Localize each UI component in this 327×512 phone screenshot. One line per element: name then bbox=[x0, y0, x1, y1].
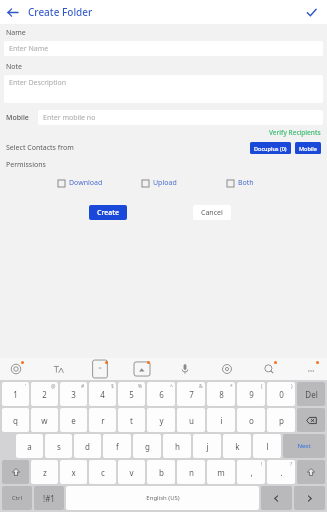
button[interactable]: u bbox=[177, 408, 205, 432]
staticText: Upload bbox=[153, 178, 177, 188]
button[interactable]: q bbox=[2, 408, 29, 432]
button[interactable]: w bbox=[31, 408, 58, 432]
staticText: y bbox=[159, 415, 164, 426]
staticText: ( bbox=[261, 383, 263, 390]
button[interactable]: 9 bbox=[237, 382, 265, 406]
button[interactable]: Next bbox=[283, 434, 325, 458]
staticText: Mobile bbox=[6, 113, 38, 123]
button[interactable]: Done bbox=[299, 0, 323, 24]
button[interactable]: y bbox=[147, 408, 175, 432]
button[interactable]: Back bbox=[0, 0, 24, 24]
button[interactable]: g bbox=[133, 434, 161, 458]
button[interactable]: e bbox=[60, 408, 87, 432]
button[interactable]: t bbox=[118, 408, 145, 432]
staticText: Next bbox=[297, 442, 311, 450]
staticText: h bbox=[175, 441, 180, 452]
staticText: * bbox=[230, 383, 233, 390]
staticText: r bbox=[101, 415, 105, 426]
staticText: s bbox=[57, 441, 61, 452]
button[interactable]: Docuplus (0) bbox=[250, 142, 291, 154]
button[interactable]: Voice input bbox=[175, 359, 195, 379]
button[interactable]: v bbox=[118, 460, 145, 484]
staticText: . bbox=[280, 467, 283, 478]
button[interactable]: Shift bbox=[297, 460, 325, 484]
staticText: ^ bbox=[170, 383, 173, 390]
button[interactable]: Enter Description bbox=[4, 75, 323, 103]
button[interactable]: Ctrl bbox=[2, 486, 32, 510]
button[interactable]: Move cursor right bbox=[294, 486, 325, 510]
button[interactable]: 3 bbox=[60, 382, 87, 406]
staticText: , bbox=[250, 467, 253, 478]
button[interactable]: Emoji bbox=[6, 359, 26, 379]
button[interactable]: p bbox=[267, 408, 295, 432]
staticText: Del bbox=[305, 389, 318, 400]
staticText: Ctrl bbox=[12, 494, 22, 502]
button[interactable]: Enter mobile no bbox=[38, 110, 323, 125]
button[interactable]: !#1 bbox=[34, 486, 64, 510]
button[interactable]: a bbox=[16, 434, 43, 458]
button[interactable]: 4 bbox=[89, 382, 116, 406]
staticText: ) bbox=[291, 383, 293, 390]
button[interactable]: 0 bbox=[267, 382, 295, 406]
button[interactable]: 8 bbox=[207, 382, 235, 406]
button[interactable]: d bbox=[74, 434, 101, 458]
button[interactable]: m bbox=[207, 460, 235, 484]
button[interactable]: Stickers bbox=[90, 359, 110, 379]
button[interactable]: 7 bbox=[177, 382, 205, 406]
button[interactable]: Move cursor left bbox=[261, 486, 292, 510]
button[interactable]: k bbox=[223, 434, 251, 458]
button[interactable]: Translate bbox=[48, 359, 68, 379]
button[interactable]: Both bbox=[227, 178, 299, 188]
staticText: 2 bbox=[42, 389, 47, 400]
staticText: c bbox=[101, 467, 105, 478]
button[interactable]: Del bbox=[297, 382, 325, 406]
button[interactable]: Upload bbox=[142, 178, 227, 188]
staticText: @ bbox=[51, 383, 56, 390]
button[interactable]: , bbox=[237, 460, 265, 484]
staticText: ' bbox=[25, 383, 27, 390]
button[interactable]: Verify Recipients bbox=[269, 128, 321, 137]
button[interactable]: English (US) bbox=[66, 486, 259, 510]
button[interactable]: Settings bbox=[217, 359, 237, 379]
button[interactable]: . bbox=[267, 460, 295, 484]
button[interactable]: b bbox=[147, 460, 175, 484]
button[interactable]: s bbox=[45, 434, 72, 458]
staticText: e bbox=[71, 415, 76, 426]
button[interactable]: f bbox=[103, 434, 131, 458]
button[interactable]: o bbox=[237, 408, 265, 432]
button[interactable]: Images bbox=[132, 359, 152, 379]
button[interactable]: Search bbox=[259, 359, 279, 379]
button[interactable]: Create bbox=[89, 205, 127, 220]
staticText: q bbox=[13, 415, 18, 426]
button[interactable]: More options bbox=[301, 359, 321, 379]
button[interactable]: 2 bbox=[31, 382, 58, 406]
button[interactable]: Cancel bbox=[193, 205, 231, 220]
staticText: Permissions bbox=[6, 160, 46, 170]
button[interactable]: Backspace bbox=[297, 408, 325, 432]
button[interactable]: h bbox=[163, 434, 191, 458]
staticText: Docuplus (0) bbox=[254, 145, 287, 152]
button[interactable]: z bbox=[31, 460, 58, 484]
button[interactable]: x bbox=[60, 460, 87, 484]
staticText: 4 bbox=[100, 389, 105, 400]
button[interactable]: i bbox=[207, 408, 235, 432]
staticText: !#1 bbox=[43, 493, 55, 504]
staticText: v bbox=[129, 467, 134, 478]
button[interactable]: Mobile bbox=[295, 142, 321, 154]
button[interactable]: r bbox=[89, 408, 116, 432]
button[interactable]: j bbox=[193, 434, 221, 458]
staticText: f bbox=[116, 441, 119, 452]
button[interactable]: c bbox=[89, 460, 116, 484]
button[interactable]: l bbox=[253, 434, 281, 458]
staticText: 9 bbox=[249, 389, 254, 400]
staticText: k bbox=[235, 441, 240, 452]
button[interactable]: Enter Name bbox=[4, 41, 323, 56]
button[interactable]: 1 bbox=[2, 382, 29, 406]
button[interactable]: 5 bbox=[118, 382, 145, 406]
button[interactable]: n bbox=[177, 460, 205, 484]
button[interactable]: 6 bbox=[147, 382, 175, 406]
button[interactable]: Download bbox=[58, 178, 142, 188]
staticText: Mobile bbox=[299, 145, 317, 152]
button[interactable]: Shift bbox=[2, 460, 29, 484]
staticText: t bbox=[130, 415, 133, 426]
